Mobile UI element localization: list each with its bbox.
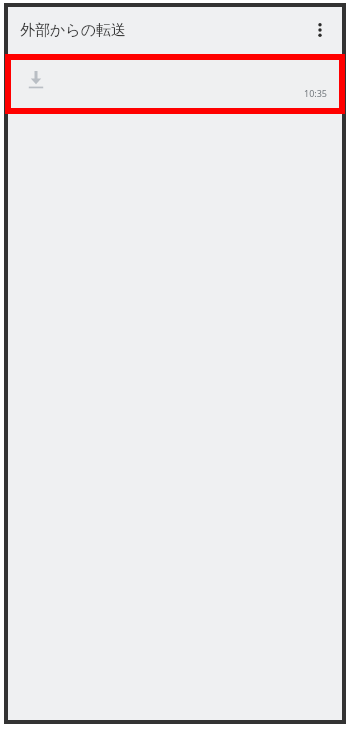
button[interactable]: More options — [298, 8, 342, 52]
staticText: 外部からの転送 — [20, 21, 127, 40]
button[interactable]: XXXXXXXXX.vcf — [15, 53, 335, 105]
staticText: 10:35 — [303, 87, 327, 99]
